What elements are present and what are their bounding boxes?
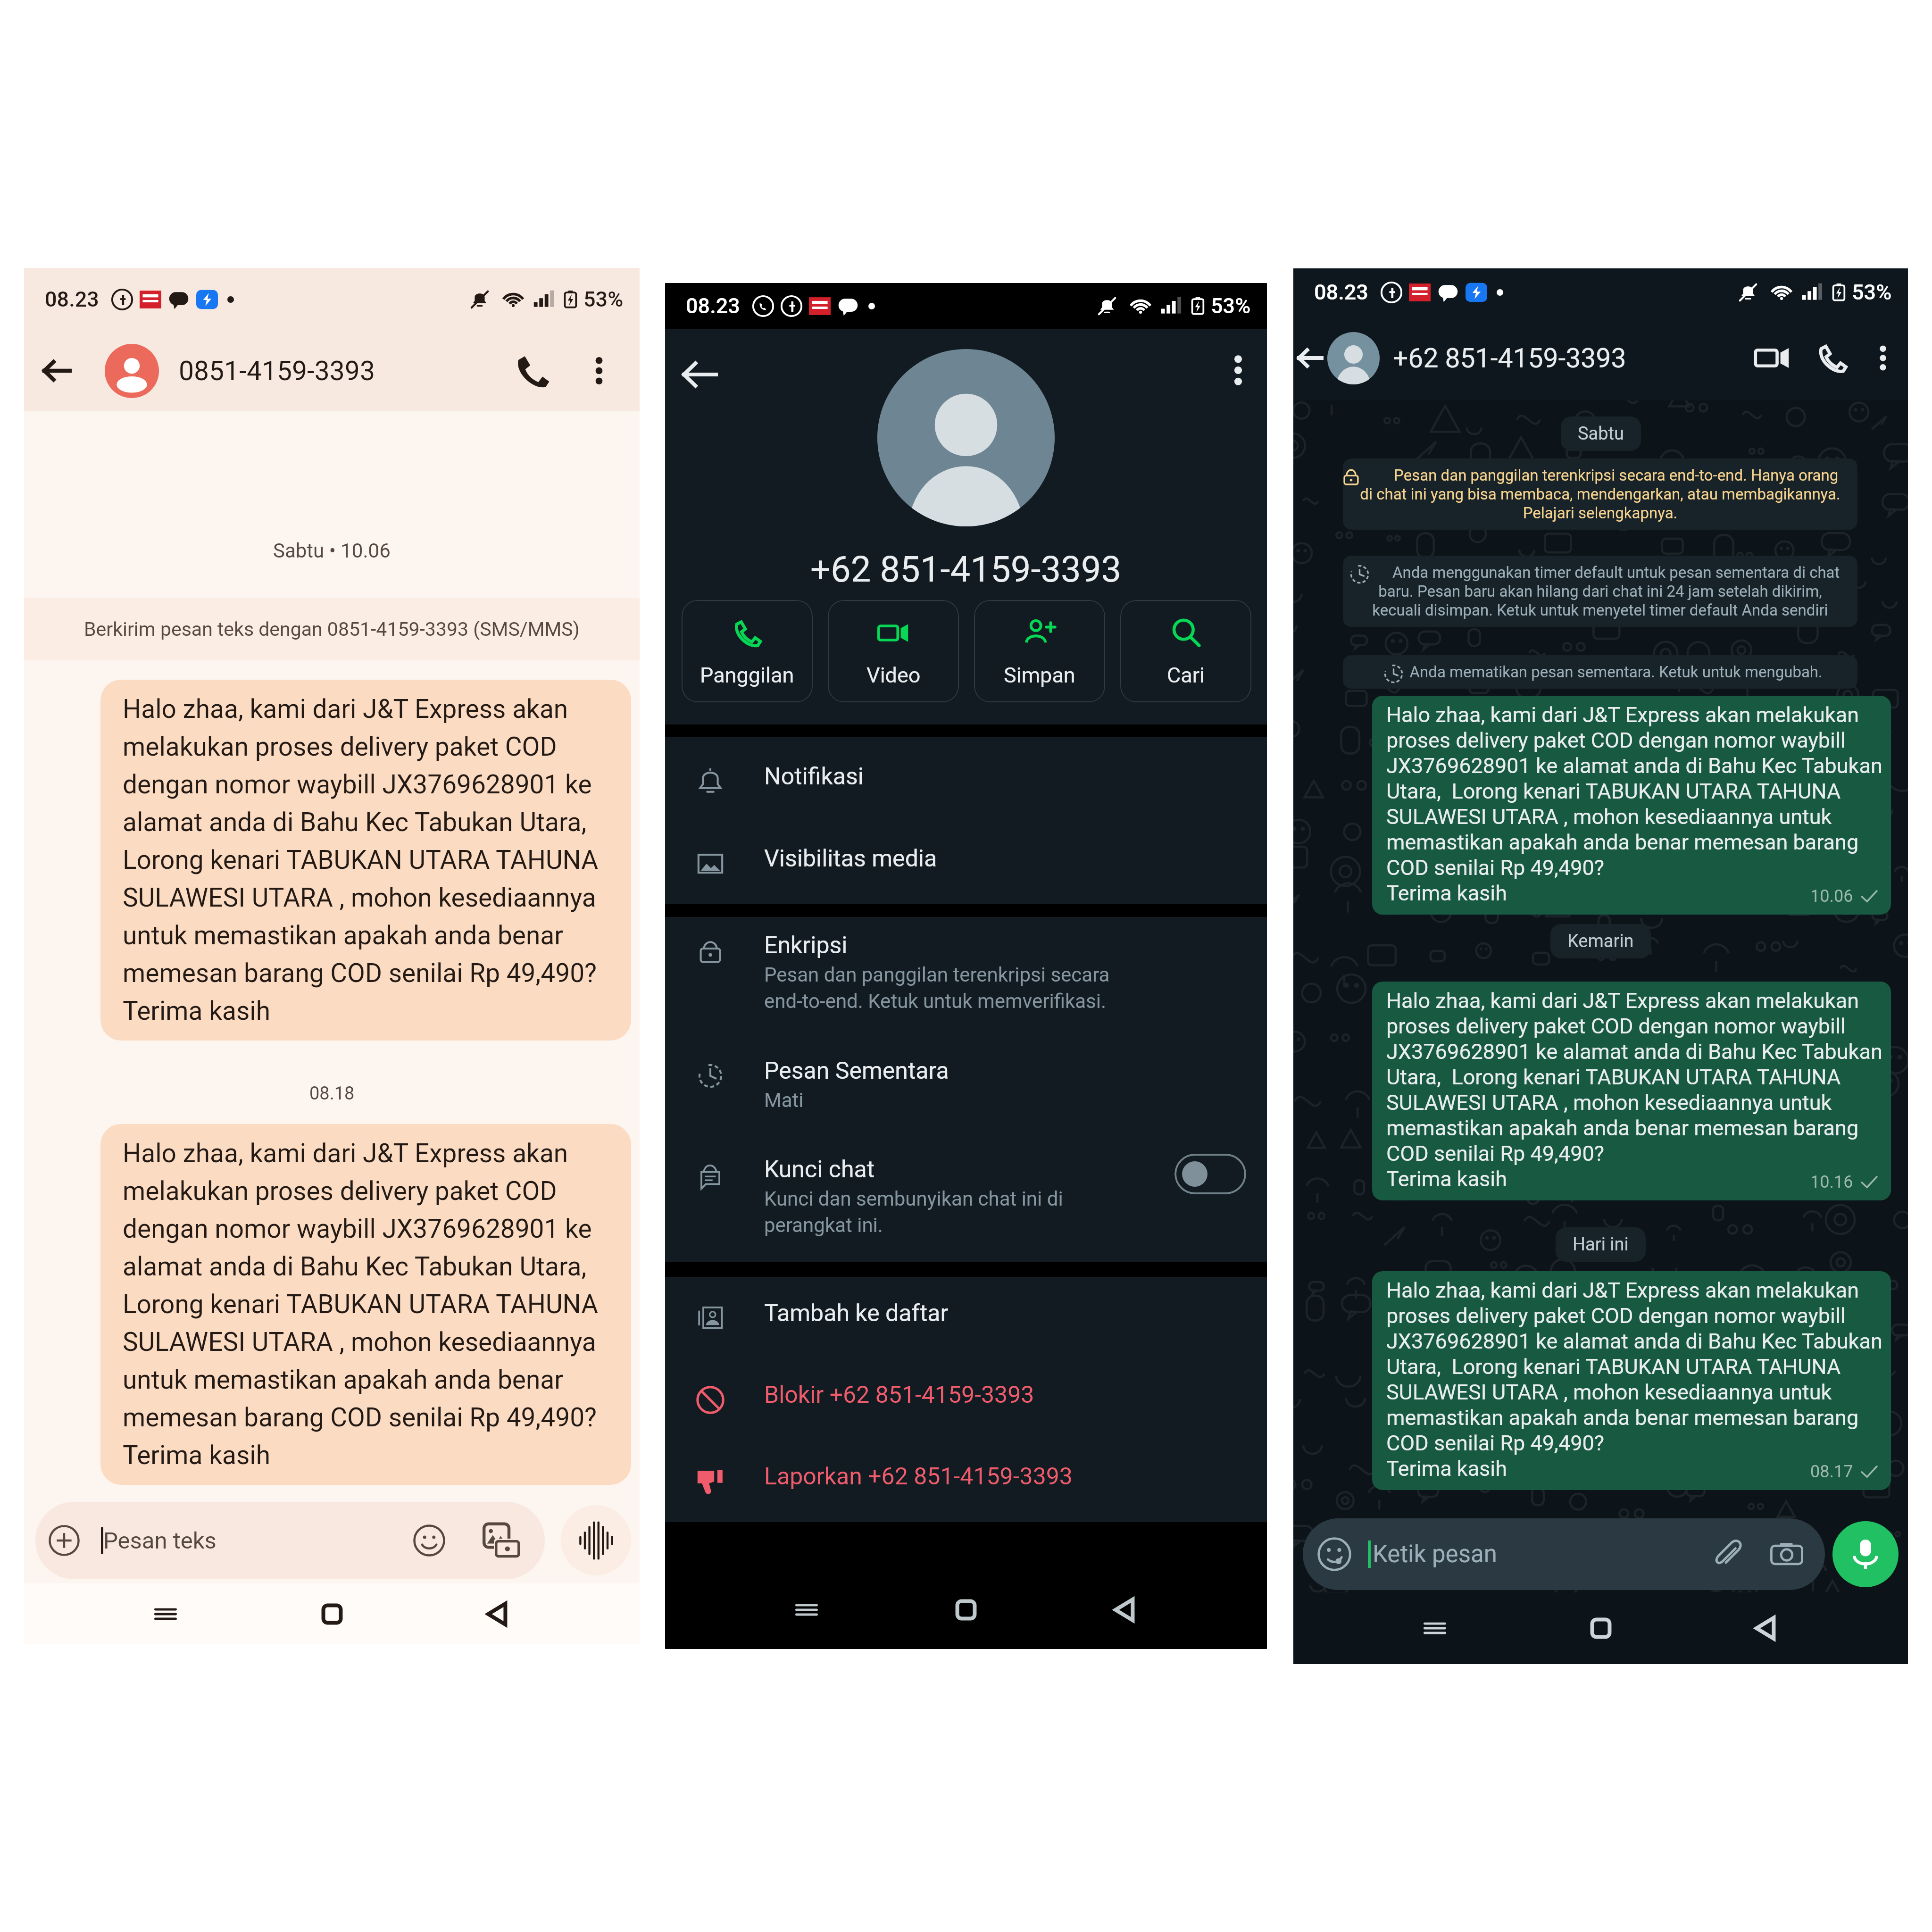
button[interactable]: Home — [945, 1589, 987, 1631]
staticText: Pesan teks — [103, 1527, 217, 1554]
staticText: Kunci chat — [764, 1156, 874, 1183]
button[interactable]: Laporkan +62 851-4159-3393 — [665, 1463, 1267, 1495]
button[interactable]: More options — [584, 356, 614, 386]
button[interactable]: Back — [477, 1593, 519, 1635]
button[interactable]: Voice message — [561, 1505, 631, 1575]
staticText: 0851-4159-3393 — [179, 355, 375, 387]
staticText: Berkirim pesan teks dengan 0851-4159-339… — [84, 618, 580, 641]
staticText: +62 851-4159-3393 — [810, 548, 1122, 590]
button[interactable]: Visibilitas media — [665, 845, 1267, 877]
button[interactable]: Pesan dan panggilan terenkripsi secara e… — [1343, 458, 1857, 530]
button[interactable]: Anda mematikan pesan sementara. Ketuk un… — [1343, 655, 1857, 689]
button[interactable]: Home — [1580, 1607, 1622, 1649]
staticText: Pesan dan panggilan terenkripsi secara e… — [1357, 466, 1843, 522]
staticText: Visibilitas media — [764, 845, 937, 873]
staticText: Simpan — [1004, 663, 1075, 688]
button[interactable]: Halo zhaa, kami dari J&T Express akan me… — [100, 680, 631, 1041]
staticText: +62 851-4159-3393 — [1393, 342, 1626, 374]
staticText: Kemarin — [1567, 931, 1634, 952]
staticText: Blokir +62 851-4159-3393 — [764, 1381, 1034, 1409]
staticText: Video — [866, 663, 921, 688]
button[interactable]: Menu — [785, 1589, 828, 1631]
staticText: Hari ini — [1573, 1234, 1629, 1255]
staticText: 53% — [583, 287, 624, 312]
staticText: 10.16 — [1810, 1172, 1853, 1192]
staticText: Halo zhaa, kami dari J&T Express akan me… — [123, 694, 616, 1026]
button[interactable]: Record voice message — [1832, 1521, 1899, 1587]
button[interactable]: Cari — [1120, 600, 1251, 702]
staticText: Halo zhaa, kami dari J&T Express akan me… — [1386, 1278, 1905, 1481]
staticText: 08.18 — [309, 1083, 355, 1104]
button[interactable]: Blokir +62 851-4159-3393 — [665, 1381, 1267, 1413]
button[interactable]: Call — [1813, 339, 1851, 377]
staticText: Pesan Sementara — [764, 1057, 949, 1085]
staticText: Halo zhaa, kami dari J&T Express akan me… — [1386, 988, 1905, 1191]
button[interactable]: Call — [509, 348, 555, 393]
button[interactable]: Pesan Sementara — [665, 1057, 1267, 1112]
staticText: Laporkan +62 851-4159-3393 — [764, 1463, 1073, 1491]
button[interactable]: Tambah ke daftar — [665, 1299, 1267, 1332]
button[interactable]: Halo zhaa, kami dari J&T Express akan me… — [100, 1124, 631, 1485]
staticText: Sabtu • 10.06 — [273, 539, 391, 562]
button[interactable]: Kunci chat — [665, 1156, 1267, 1237]
button[interactable]: Back — [1296, 344, 1324, 372]
button[interactable] — [1372, 696, 1891, 915]
button[interactable] — [105, 344, 159, 398]
button[interactable]: More options — [1222, 354, 1255, 387]
staticText: Sabtu — [1578, 423, 1624, 444]
button[interactable]: Anda menggunakan timer default untuk pes… — [1343, 556, 1857, 627]
button[interactable]: Menu — [1414, 1607, 1456, 1649]
button[interactable] — [1372, 1271, 1891, 1490]
button[interactable]: Back — [1104, 1589, 1147, 1631]
button[interactable]: Notifikasi — [665, 763, 1267, 795]
staticText: 08.23 — [1314, 280, 1368, 305]
staticText: Pesan dan panggilan terenkripsi secara e… — [764, 963, 1110, 1013]
staticText: 10.06 — [1810, 886, 1853, 906]
staticText: Anda menggunakan timer default untuk pes… — [1357, 563, 1843, 619]
staticText: Halo zhaa, kami dari J&T Express akan me… — [123, 1138, 616, 1471]
staticText: Mati — [764, 1089, 804, 1112]
button[interactable]: Enkripsi — [665, 932, 1267, 1013]
button[interactable]: Simpan — [974, 600, 1105, 702]
button[interactable]: Home — [311, 1593, 353, 1635]
button[interactable]: Video — [828, 600, 959, 702]
staticText: 08.17 — [1810, 1462, 1853, 1482]
button[interactable]: Back — [1745, 1607, 1788, 1649]
staticText: 53% — [1211, 293, 1251, 318]
button[interactable]: Back — [676, 351, 724, 398]
staticText: 08.23 — [45, 287, 99, 312]
staticText: 53% — [1852, 280, 1892, 305]
button[interactable]: Pesan teks — [35, 1502, 545, 1579]
button[interactable]: Panggilan — [682, 600, 813, 702]
staticText: Panggilan — [700, 663, 794, 688]
button[interactable] — [1372, 982, 1891, 1200]
button[interactable] — [1174, 1154, 1246, 1194]
staticText: Tambah ke daftar — [764, 1299, 949, 1327]
staticText: Halo zhaa, kami dari J&T Express akan me… — [1386, 702, 1905, 906]
staticText: Enkripsi — [764, 932, 848, 959]
staticText: Ketik pesan — [1373, 1540, 1497, 1568]
staticText: Notifikasi — [764, 763, 864, 791]
staticText: Kunci dan sembunyikan chat ini di perang… — [764, 1187, 1063, 1237]
button[interactable]: Video call — [1751, 337, 1793, 379]
staticText: Cari — [1167, 663, 1205, 688]
button[interactable]: More options — [1869, 344, 1897, 372]
button[interactable]: Back — [34, 348, 80, 393]
staticText: 08.23 — [686, 293, 740, 318]
button[interactable]: Ketik pesan — [1303, 1518, 1825, 1590]
staticText: Anda mematikan pesan sementara. Ketuk un… — [1357, 663, 1843, 681]
button[interactable]: Menu — [144, 1593, 187, 1635]
